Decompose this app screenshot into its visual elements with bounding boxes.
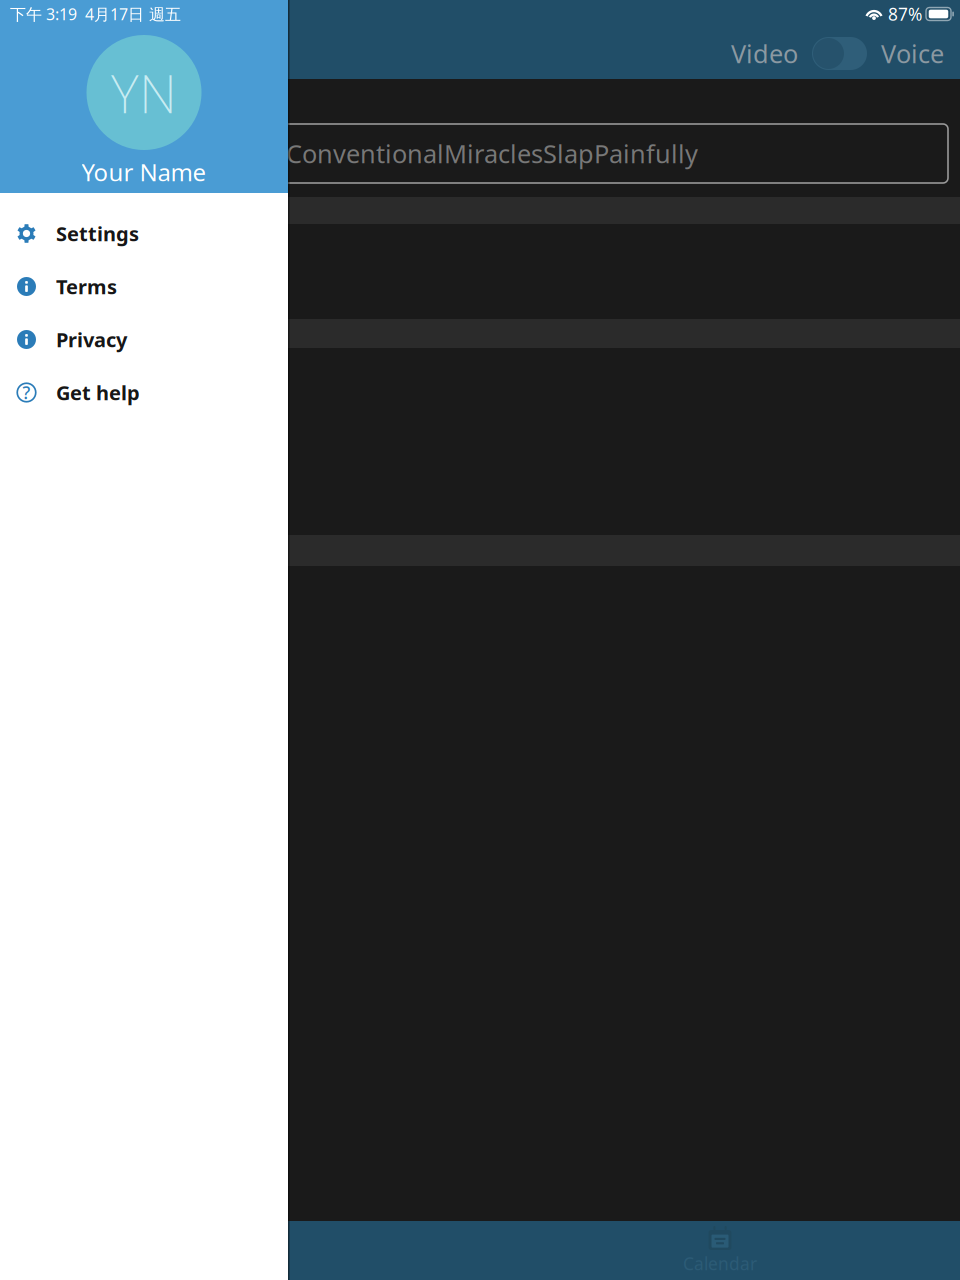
staticText: ConventionalMiraclesSlapPainfully	[286, 137, 698, 170]
staticText: Video	[731, 37, 798, 70]
staticText: 4月17日 週五	[85, 3, 181, 25]
button[interactable]: Settings	[0, 207, 288, 260]
staticText: 87%	[888, 2, 922, 25]
staticText: Privacy	[56, 326, 127, 353]
staticText: YN	[111, 57, 177, 128]
staticText: Get help	[56, 379, 140, 406]
staticText: Your Name	[81, 156, 206, 188]
button[interactable]: ?	[0, 366, 288, 419]
staticText: 下午 3:19	[10, 3, 77, 25]
staticText: ?	[22, 381, 30, 404]
staticText: Calendar	[683, 1252, 757, 1275]
button[interactable]: Terms	[0, 260, 288, 313]
button[interactable]: Privacy	[0, 313, 288, 366]
staticText: Terms	[56, 273, 117, 300]
button[interactable]: Voice	[881, 28, 944, 78]
button[interactable]: Video	[731, 28, 798, 78]
staticText: Settings	[56, 220, 139, 247]
button[interactable]: Video Voice mode	[812, 37, 867, 70]
button[interactable]: Contacts	[0, 1221, 480, 1280]
staticText: Voice	[881, 37, 944, 70]
